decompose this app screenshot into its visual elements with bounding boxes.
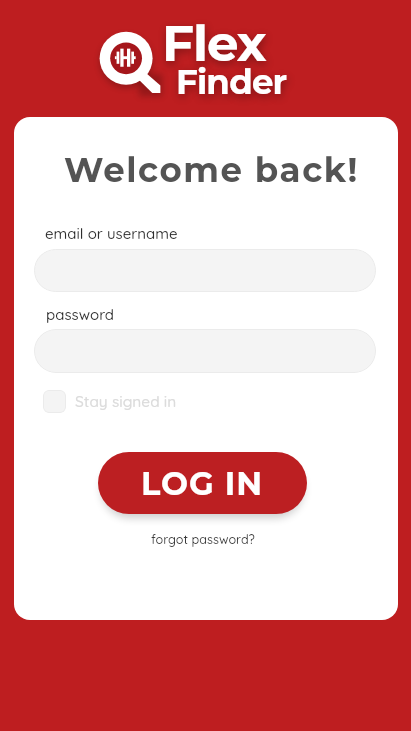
- staticText: Flex: [162, 13, 266, 74]
- button[interactable]: forgot password?: [14, 531, 395, 547]
- staticText: Welcome back!: [64, 149, 359, 190]
- staticText: Stay signed in: [75, 392, 177, 411]
- button[interactable]: Stay signed in: [43, 390, 177, 413]
- staticText: email or username: [45, 224, 178, 243]
- button[interactable]: LOG IN: [98, 452, 307, 514]
- staticText: password: [46, 305, 115, 324]
- staticText: Finder: [176, 61, 287, 102]
- staticText: LOG IN: [141, 464, 264, 503]
